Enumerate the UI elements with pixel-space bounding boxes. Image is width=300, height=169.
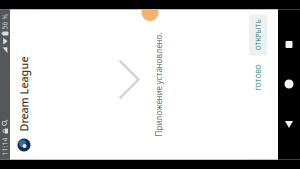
- staticText: Приложение установлено.: [98, 88, 202, 99]
